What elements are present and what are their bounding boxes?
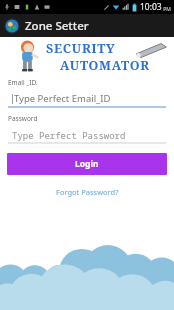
staticText: 10:03 bbox=[140, 1, 162, 13]
button[interactable]: Login bbox=[7, 153, 167, 175]
staticText: Type Perfect Email_ID bbox=[14, 92, 111, 105]
button[interactable]: Forgot Password? bbox=[50, 185, 125, 199]
other: App icon bbox=[5, 19, 19, 33]
staticText: PM bbox=[162, 6, 171, 13]
staticText: AUTOMATOR bbox=[60, 57, 150, 74]
staticText: Password bbox=[8, 114, 38, 123]
button[interactable]: Type Perfect Password bbox=[8, 128, 166, 141]
staticText: Login bbox=[75, 158, 99, 170]
staticText: Zone Setter bbox=[25, 18, 89, 34]
button[interactable]: Type Perfect Email_ID bbox=[8, 92, 166, 105]
staticText: Email _ID. bbox=[8, 78, 38, 87]
staticText: Type Perfect Password bbox=[12, 129, 126, 141]
staticText: SECURITY bbox=[46, 40, 116, 57]
